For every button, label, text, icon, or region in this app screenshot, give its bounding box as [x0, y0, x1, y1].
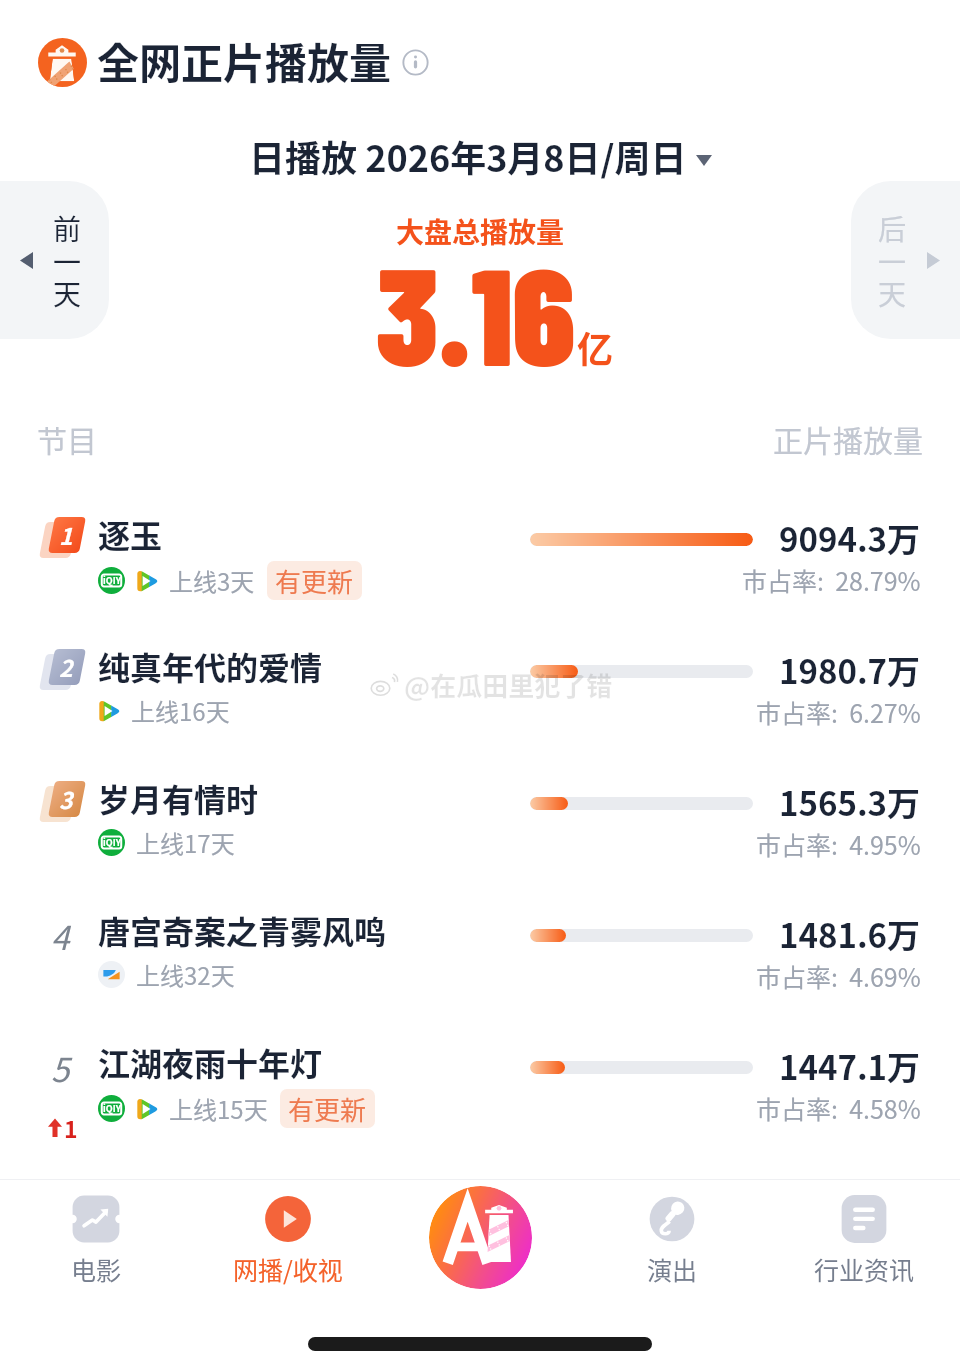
button[interactable]: 前 [0, 181, 109, 339]
staticText: 市占率: 4.58% [756, 1090, 921, 1126]
staticText: 大盘总播放量 [396, 211, 565, 252]
staticText: @在瓜田里犯了错 [404, 666, 613, 704]
staticText: 逐玉 [98, 511, 163, 557]
button[interactable]: 3 [0, 763, 960, 895]
staticText: 有更新 [288, 1090, 367, 1128]
staticText: 1565.3万 [779, 778, 921, 826]
staticText: 上线16天 [131, 693, 230, 728]
staticText: 行业资讯 [814, 1251, 915, 1287]
button[interactable]: 电影 [0, 1179, 192, 1287]
staticText: 5 [51, 1044, 70, 1092]
staticText: 市占率: 4.69% [756, 958, 921, 994]
staticText: 演出 [647, 1251, 698, 1287]
staticText: 一 [53, 241, 82, 282]
button[interactable]: 行业资讯 [768, 1179, 960, 1287]
staticText: 天 [878, 273, 907, 314]
staticText: 前 [53, 208, 82, 249]
staticText: 节目 [37, 417, 97, 460]
staticText: 市占率: 6.27% [756, 694, 921, 730]
staticText: 9094.3万 [779, 514, 921, 562]
staticText: 市占率: 28.79% [742, 562, 921, 598]
staticText: iQIY [103, 1102, 121, 1115]
staticText: 电影 [71, 1251, 122, 1287]
staticText: 唐宫奇案之青雾风鸣 [98, 907, 387, 953]
staticText: 正片播放量 [773, 417, 923, 460]
staticText: 4 [51, 912, 70, 960]
button[interactable]: AI assistant [429, 1186, 532, 1289]
staticText: 江湖夜雨十年灯 [98, 1039, 323, 1085]
staticText: 上线17天 [136, 825, 235, 860]
staticText: 1 [64, 1111, 78, 1144]
staticText: 2 [59, 650, 73, 683]
staticText: 3.16 [376, 230, 575, 393]
staticText: 1447.1万 [779, 1042, 921, 1090]
staticText: 亿 [577, 321, 614, 373]
staticText: 1980.7万 [779, 646, 921, 694]
staticText: 纯真年代的爱情 [98, 643, 323, 689]
button[interactable]: Info [402, 49, 429, 76]
staticText: 一 [878, 241, 907, 282]
button[interactable]: 后 [851, 181, 960, 339]
staticText: 全网正片播放量 [97, 30, 392, 91]
button[interactable]: 2 [0, 631, 960, 763]
button[interactable]: 日播放 2026年3月8日/周日 [249, 130, 712, 182]
button[interactable]: 4 [0, 895, 960, 1027]
button[interactable]: 5 [0, 1027, 960, 1159]
staticText: iQIY [103, 574, 121, 587]
staticText: 上线32天 [136, 957, 235, 992]
staticText: 上线15天 [169, 1091, 268, 1126]
staticText: 网播/收视 [233, 1251, 343, 1287]
staticText: 3 [59, 782, 73, 815]
staticText: 天 [53, 273, 82, 314]
staticText: 岁月有情时 [98, 775, 259, 821]
staticText: 1 [59, 518, 73, 551]
staticText: 1481.6万 [779, 910, 921, 958]
staticText: iQIY [103, 836, 121, 849]
staticText: 上线3天 [169, 563, 255, 598]
staticText: 日播放 2026年3月8日/周日 [249, 130, 687, 182]
button[interactable]: 网播/收视 [192, 1179, 384, 1287]
button[interactable]: 1 [0, 499, 960, 631]
staticText: 市占率: 4.95% [756, 826, 921, 862]
button[interactable]: 演出 [576, 1179, 768, 1287]
staticText: 后 [878, 208, 907, 249]
staticText: 有更新 [275, 562, 354, 600]
